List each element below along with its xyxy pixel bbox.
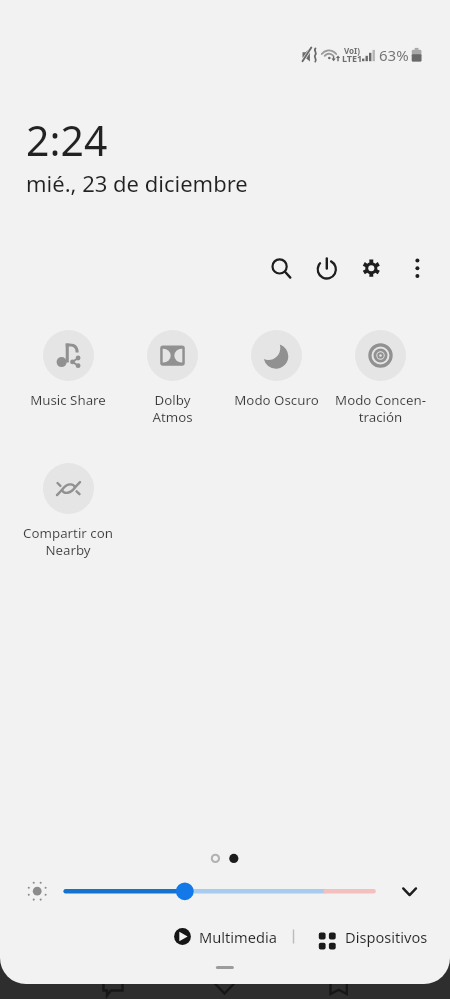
- button[interactable]: Compartir con Nearby: [16, 463, 120, 559]
- button[interactable]: Modo Concen- tración: [328, 330, 432, 426]
- button[interactable]: More options: [391, 248, 435, 288]
- staticText: Modo Concen- tración: [335, 391, 426, 426]
- button[interactable]: Brightness: [20, 874, 390, 908]
- staticText: Dispositivos: [345, 927, 428, 947]
- button[interactable]: Dispositivos: [308, 924, 432, 950]
- staticText: LTE1: [342, 52, 363, 64]
- staticText: 2:24: [26, 112, 108, 168]
- staticText: mié., 23 de diciembre: [26, 168, 248, 198]
- button[interactable]: Multimedia: [170, 924, 276, 950]
- staticText: Multimedia: [199, 927, 276, 947]
- button[interactable]: Search: [262, 248, 299, 288]
- staticText: Music Share: [30, 391, 106, 409]
- button[interactable]: Dolby Atmos: [120, 330, 224, 426]
- button[interactable]: Music Share: [16, 330, 120, 409]
- button[interactable]: Expand brightness settings: [394, 874, 428, 908]
- staticText: VoI): [344, 45, 360, 56]
- button[interactable]: Power: [299, 248, 346, 288]
- staticText: 63%: [379, 45, 409, 65]
- button[interactable]: Modo Oscuro: [224, 330, 328, 409]
- button[interactable]: Settings: [346, 248, 391, 288]
- staticText: Dolby Atmos: [152, 391, 193, 426]
- staticText: Modo Oscuro: [234, 391, 319, 409]
- staticText: Compartir con Nearby: [23, 524, 113, 559]
